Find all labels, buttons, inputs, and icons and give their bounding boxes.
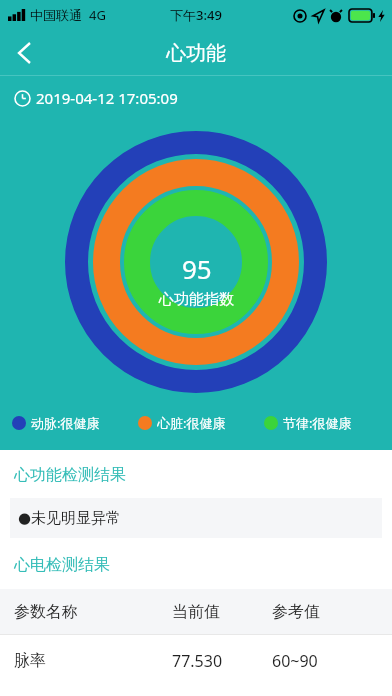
staticText: 心功能 (166, 41, 226, 66)
staticText: 脉率 (14, 651, 46, 671)
staticText: 节律:很健康 (283, 414, 352, 432)
staticText: 参考值 (272, 602, 320, 622)
staticText: 中国联通 (30, 7, 82, 23)
button[interactable]: Back (0, 30, 48, 76)
staticText: ●未见明显异常 (18, 509, 122, 528)
staticText: 动脉:很健康 (31, 414, 100, 432)
button[interactable]: 脉率 (0, 635, 392, 687)
staticText: 心功能指数 (159, 290, 234, 309)
staticText: 77.530 (172, 650, 223, 672)
staticText: 心电检测结果 (14, 555, 110, 575)
staticText: 当前值 (172, 602, 220, 622)
staticText: 参数名称 (14, 602, 78, 622)
staticText: 95 (182, 251, 212, 286)
staticText: 下午3:49 (170, 6, 222, 24)
staticText: 心脏:很健康 (157, 414, 226, 432)
staticText: 4G (89, 6, 106, 24)
staticText: 心功能检测结果 (14, 465, 126, 485)
staticText: 2019-04-12 17:05:09 (36, 88, 178, 108)
staticText: 60~90 (272, 650, 318, 672)
